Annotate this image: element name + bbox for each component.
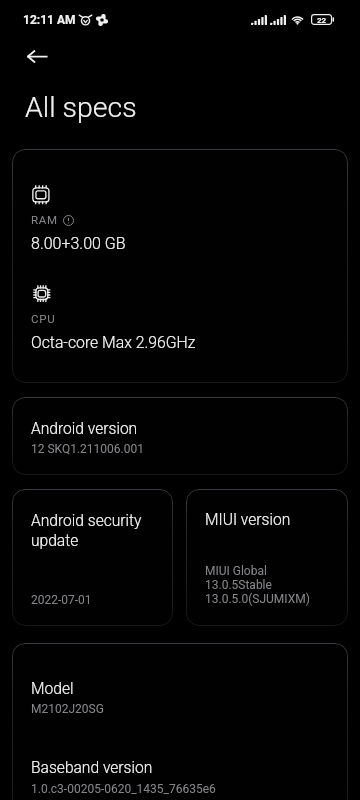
staticText: 12:11 AM [23, 12, 76, 27]
staticText: 22 [317, 15, 327, 25]
staticText: Baseband version [31, 758, 153, 778]
staticText: All specs [25, 89, 137, 125]
staticText: Android version [31, 419, 138, 439]
button[interactable]: Back [15, 34, 59, 78]
staticText: 1.0.c3-00205-0620_1435_76635e6 [31, 781, 216, 796]
button[interactable]: MIUI version [186, 489, 348, 626]
staticText: 12 SKQ1.211006.001 [31, 441, 144, 456]
staticText: Android security update [31, 510, 142, 550]
button[interactable]: RAM [12, 149, 348, 383]
staticText: 2022-07-01 [31, 592, 92, 607]
staticText: 8.00+3.00 GB [31, 233, 126, 253]
staticText: MIUI version [205, 510, 291, 530]
staticText: MIUI Global 13.0.5Stable 13.0.5.0(SJUMIX… [205, 564, 310, 606]
staticText: Model [31, 679, 74, 699]
button[interactable]: Android version [12, 397, 348, 475]
staticText: Octa-core Max 2.96GHz [31, 332, 196, 352]
staticText: M2102J20SG [31, 701, 104, 716]
staticText: RAM [31, 213, 58, 227]
button[interactable]: Android security update [12, 489, 173, 626]
button[interactable]: Model [12, 643, 348, 800]
staticText: CPU [31, 312, 56, 326]
